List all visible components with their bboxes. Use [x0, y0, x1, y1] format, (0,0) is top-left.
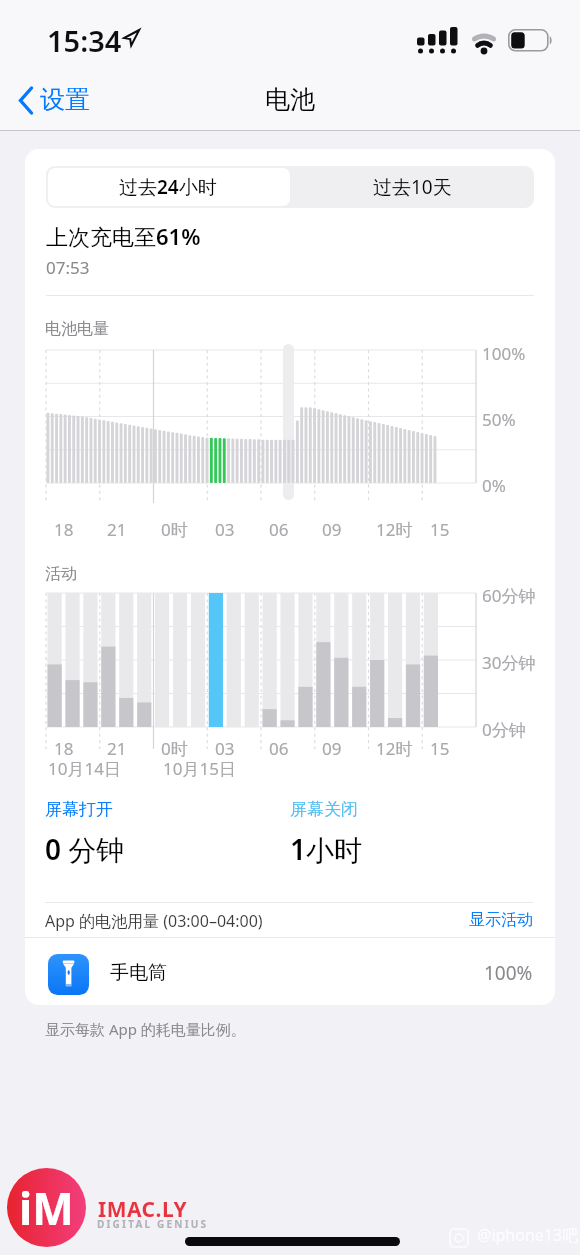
staticText: 06: [269, 737, 289, 760]
staticText: 100%: [482, 342, 526, 365]
staticText: @iphone13吧: [477, 1224, 579, 1246]
staticText: 过去10天: [373, 174, 452, 200]
staticText: 15: [430, 737, 450, 760]
staticText: 设置: [40, 84, 90, 115]
staticText: 12时: [376, 737, 413, 760]
staticText: 显示每款 App 的耗电量比例。: [45, 1019, 246, 1039]
button[interactable]: 显示活动: [45, 910, 533, 930]
staticText: 18: [54, 518, 74, 541]
staticText: 屏幕打开: [45, 799, 113, 820]
staticText: 21: [107, 518, 127, 541]
staticText: 50%: [482, 408, 516, 431]
staticText: 0分钟: [482, 718, 526, 741]
staticText: App 的电池用量 (03:00–04:00): [45, 910, 263, 932]
staticText: 21: [107, 737, 127, 760]
button[interactable]: 过去10天: [290, 166, 534, 208]
staticText: 09: [322, 737, 342, 760]
staticText: 15:34: [47, 21, 122, 60]
staticText: 屏幕关闭: [290, 799, 358, 820]
staticText: 过去24小时: [119, 174, 217, 200]
staticText: 15: [430, 518, 450, 541]
button[interactable]: 设置: [14, 82, 124, 122]
staticText: 手电筒: [110, 961, 167, 985]
staticText: 0时: [161, 518, 188, 541]
staticText: 0 分钟: [45, 830, 125, 868]
staticText: 30分钟: [482, 651, 536, 674]
staticText: 电池: [265, 84, 315, 115]
staticText: 活动: [45, 564, 77, 584]
staticText: 03: [215, 518, 235, 541]
staticText: 电池电量: [45, 319, 109, 339]
staticText: IMAC.LY: [98, 1195, 188, 1224]
button[interactable]: 过去24小时: [46, 166, 290, 208]
staticText: 上次充电至61%: [46, 221, 201, 251]
staticText: 60分钟: [482, 584, 536, 607]
staticText: 12时: [376, 518, 413, 541]
staticText: 显示活动: [469, 910, 533, 930]
staticText: iM: [19, 1178, 74, 1238]
staticText: 0时: [161, 737, 188, 760]
staticText: 100%: [484, 960, 533, 986]
staticText: 1小时: [290, 830, 363, 868]
staticText: 10月15日: [163, 757, 236, 780]
staticText: 09: [322, 518, 342, 541]
staticText: 06: [269, 518, 289, 541]
staticText: 03: [215, 737, 235, 760]
staticText: 07:53: [46, 256, 90, 279]
staticText: 10月14日: [48, 757, 121, 780]
staticText: 18: [54, 737, 74, 760]
staticText: DIGITAL GENIUS: [97, 1217, 209, 1231]
button[interactable]: 手电筒: [25, 938, 555, 1004]
staticText: 0%: [482, 474, 506, 497]
